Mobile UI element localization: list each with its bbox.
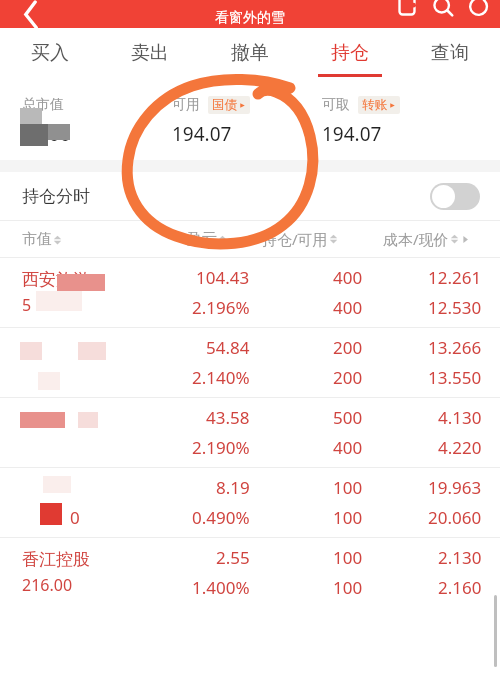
staticText: 100 bbox=[333, 576, 363, 599]
staticText: 400 bbox=[333, 266, 363, 289]
staticText: 0 bbox=[70, 506, 80, 529]
button[interactable]: Back bbox=[18, 1, 44, 27]
button[interactable]: 香江控股 bbox=[0, 538, 500, 607]
staticText: 1.400% bbox=[192, 576, 250, 599]
staticText: 200 bbox=[333, 336, 363, 359]
staticText: 400 bbox=[333, 436, 363, 459]
staticText: 成本/现价 bbox=[383, 229, 449, 249]
staticText: 12.530 bbox=[428, 296, 482, 319]
staticText: 0.490% bbox=[192, 506, 250, 529]
staticText: 4.220 bbox=[438, 436, 482, 459]
button[interactable]: 撤单 bbox=[200, 28, 300, 90]
staticText: 400 bbox=[333, 296, 363, 319]
staticText: 19.963 bbox=[428, 476, 482, 499]
staticText: 可取 bbox=[322, 96, 350, 114]
staticText: 43.58 bbox=[206, 406, 250, 429]
staticText: 盈亏 bbox=[187, 230, 217, 249]
staticText: 54.84 bbox=[206, 336, 250, 359]
staticText: 4.130 bbox=[438, 406, 482, 429]
staticText: 20.060 bbox=[428, 506, 482, 529]
staticText: 持仓 bbox=[331, 41, 369, 65]
staticText: 100 bbox=[333, 506, 363, 529]
staticText: 12.261 bbox=[428, 266, 482, 289]
button[interactable]: 盈亏 bbox=[187, 230, 227, 249]
staticText: 撤单 bbox=[231, 41, 269, 65]
staticText: 看窗外的雪 bbox=[215, 9, 285, 27]
staticText: 104.43 bbox=[196, 266, 250, 289]
button[interactable]: 国债 bbox=[208, 96, 250, 114]
button[interactable]: 买入 bbox=[0, 28, 100, 90]
button[interactable]: 54.84 bbox=[0, 328, 500, 397]
staticText: 买入 bbox=[31, 41, 69, 65]
button[interactable]: Messages bbox=[396, 3, 418, 25]
staticText: 8.19 bbox=[216, 476, 250, 499]
button[interactable]: 查询 bbox=[400, 28, 500, 90]
button[interactable]: 西安旅游 bbox=[0, 258, 500, 327]
staticText: 78.00 bbox=[22, 121, 71, 147]
staticText: 194.07 bbox=[322, 121, 382, 147]
staticText: 西安旅游 bbox=[22, 269, 90, 290]
button[interactable]: 持仓/可用 bbox=[262, 229, 338, 249]
staticText: 216.00 bbox=[22, 574, 73, 596]
staticText: 5 bbox=[22, 294, 32, 316]
staticText: 2.140% bbox=[192, 366, 250, 389]
button[interactable]: 成本/现价 bbox=[383, 229, 469, 249]
button[interactable]: 0 bbox=[0, 468, 500, 537]
staticText: 200 bbox=[333, 366, 363, 389]
staticText: 总市值 bbox=[22, 96, 64, 114]
button[interactable]: 43.58 bbox=[0, 398, 500, 467]
staticText: 2.130 bbox=[438, 546, 482, 569]
button[interactable]: Refresh bbox=[468, 3, 490, 25]
staticText: 可用 bbox=[172, 96, 200, 114]
button[interactable]: 持仓分时 toggle bbox=[430, 183, 480, 210]
staticText: 13.266 bbox=[428, 336, 482, 359]
staticText: 13.550 bbox=[428, 366, 482, 389]
staticText: 2.190% bbox=[192, 436, 250, 459]
staticText: 2.55 bbox=[216, 546, 250, 569]
staticText: 香江控股 bbox=[22, 549, 90, 570]
staticText: 100 bbox=[333, 546, 363, 569]
button[interactable]: 转账 bbox=[358, 96, 400, 114]
staticText: 194.07 bbox=[172, 121, 232, 147]
button[interactable]: 持仓分时 bbox=[0, 172, 500, 220]
staticText: 国债 bbox=[212, 97, 237, 113]
button[interactable]: 持仓 bbox=[300, 28, 400, 90]
staticText: 卖出 bbox=[131, 41, 169, 65]
staticText: 2.196% bbox=[192, 296, 250, 319]
button[interactable]: Search bbox=[432, 3, 454, 25]
staticText: 500 bbox=[333, 406, 363, 429]
staticText: 持仓/可用 bbox=[262, 229, 328, 249]
button[interactable]: 市值 bbox=[22, 230, 62, 249]
staticText: 100 bbox=[333, 476, 363, 499]
staticText: 查询 bbox=[431, 41, 469, 65]
staticText: 2.160 bbox=[438, 576, 482, 599]
staticText: 市值 bbox=[22, 230, 52, 249]
staticText: 持仓分时 bbox=[22, 186, 90, 207]
button[interactable]: 卖出 bbox=[100, 28, 200, 90]
staticText: 转账 bbox=[362, 97, 387, 113]
